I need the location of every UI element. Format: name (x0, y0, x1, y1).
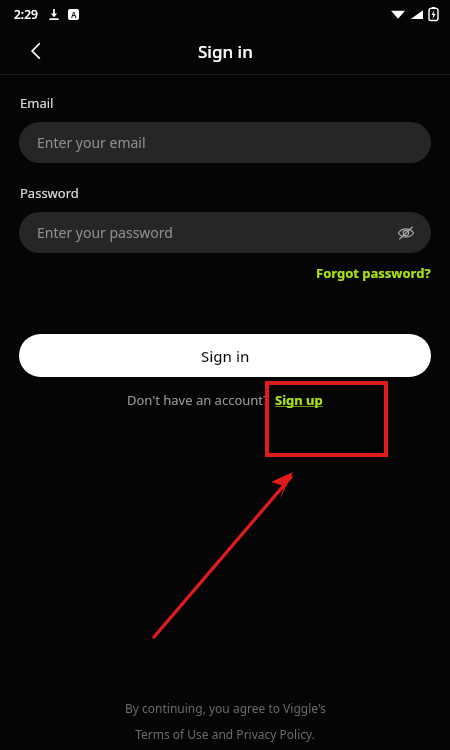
button[interactable]: Sign in (19, 334, 431, 377)
button[interactable]: Sign up (275, 391, 323, 409)
staticText: 2:29 (14, 6, 38, 22)
staticText: Sign in (198, 40, 253, 63)
button[interactable]: Terms of Use and Privacy Policy. (135, 726, 315, 742)
button[interactable]: Show password (391, 218, 421, 248)
staticText: Sign in (201, 346, 250, 366)
staticText: Enter your email (37, 133, 146, 152)
staticText: Don't have an account? (127, 391, 269, 409)
button[interactable]: Back (18, 33, 54, 69)
button[interactable]: Enter your email (19, 122, 431, 163)
button[interactable]: Enter your password (19, 212, 431, 253)
staticText: Password (20, 184, 79, 202)
staticText: By continuing, you agree to Viggle's (125, 700, 326, 716)
staticText: A (71, 9, 77, 20)
button[interactable]: Forgot password? (316, 264, 431, 282)
staticText: Email (20, 94, 54, 112)
staticText: Enter your password (37, 223, 173, 242)
